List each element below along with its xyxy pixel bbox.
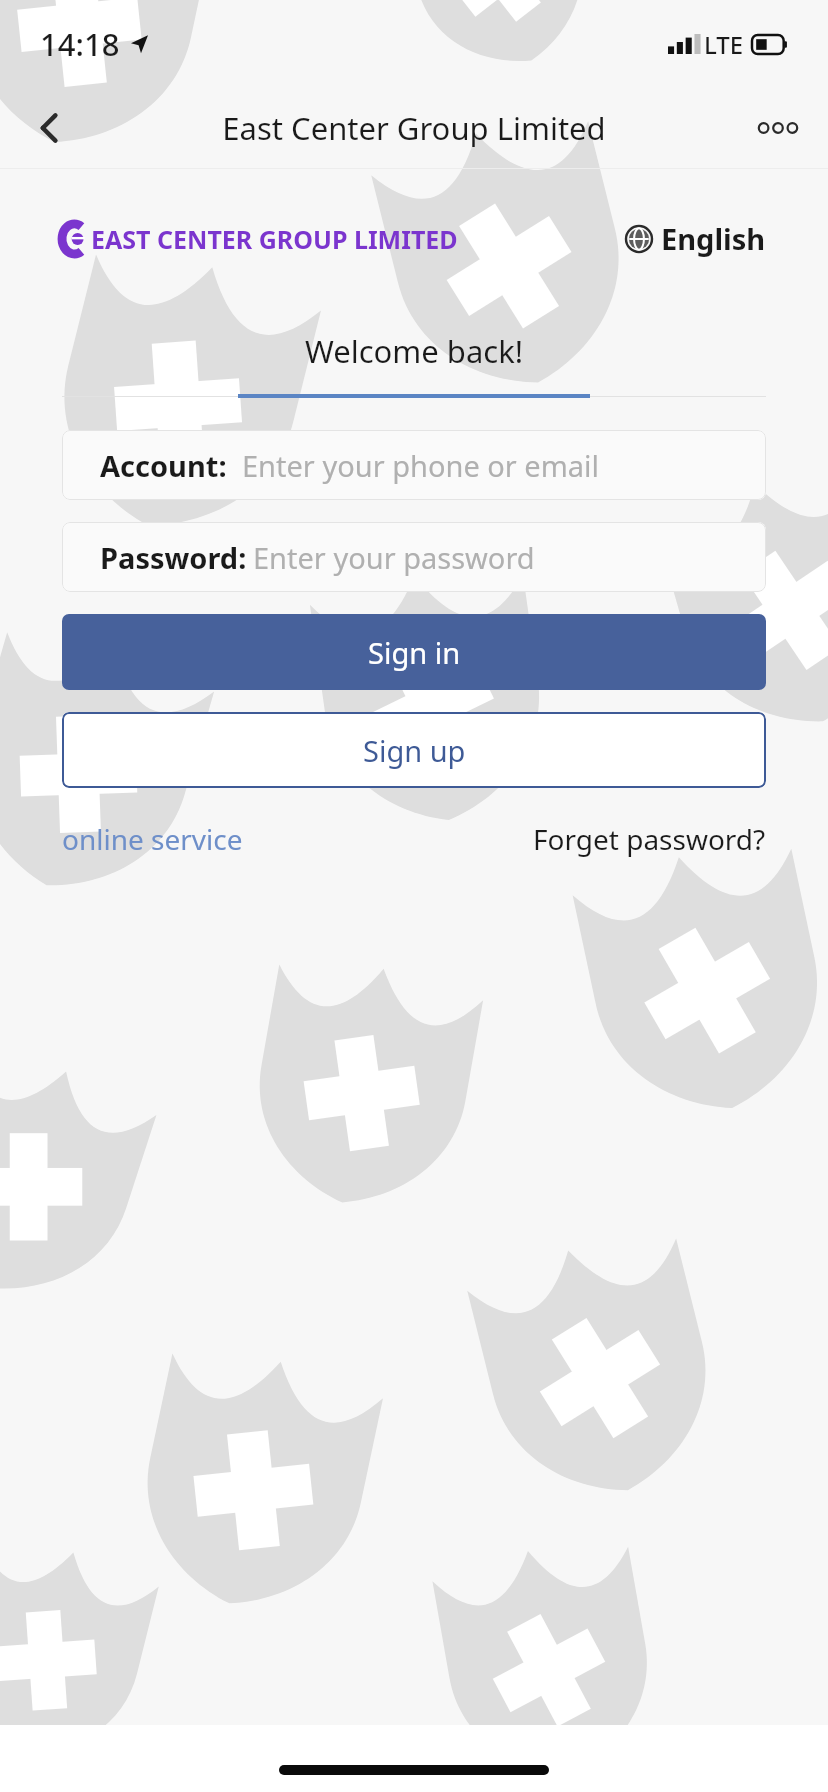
staticText: East Center Group Limited [222,107,606,149]
button[interactable]: Forget password? [533,820,766,858]
button[interactable]: online service [62,820,243,858]
button[interactable]: EAST CENTER GROUP LIMITED [62,222,458,256]
staticText: Account: [100,446,227,485]
staticText: Sign in [368,633,461,672]
staticText: Forget password? [533,820,766,858]
staticText: Password: [100,538,247,577]
button[interactable]: Account: [62,430,766,500]
button[interactable]: More options [750,100,806,156]
staticText: 14:18 [40,23,120,65]
staticText: EAST CENTER GROUP LIMITED [91,222,458,256]
staticText: Enter your password [253,538,535,577]
staticText: Enter your phone or email [242,446,600,485]
staticText: Sign up [363,731,466,770]
button[interactable]: Back [22,100,78,156]
staticText: LTE [704,28,744,61]
button[interactable]: Sign up [62,712,766,788]
button[interactable]: Sign in [62,614,766,690]
staticText: Welcome back! [305,330,524,372]
staticText: English [661,219,766,258]
button[interactable]: English [626,219,766,258]
staticText: online service [62,820,243,858]
button[interactable]: Password: [62,522,766,592]
